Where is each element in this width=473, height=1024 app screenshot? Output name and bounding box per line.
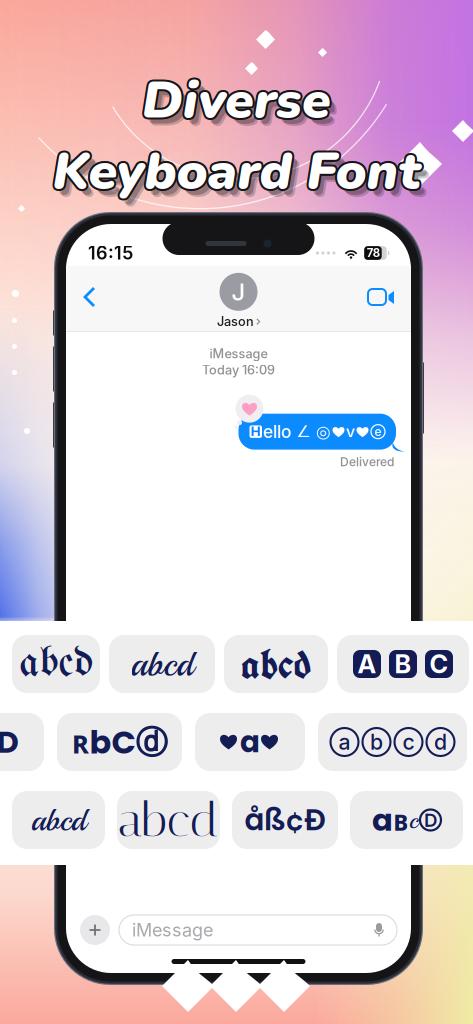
staticText: C xyxy=(429,649,448,679)
staticText: Diverse xyxy=(144,65,333,136)
staticText: A xyxy=(357,649,376,679)
staticText: ∠ xyxy=(291,422,316,441)
staticText: Keyboard Font xyxy=(52,134,420,205)
staticText: B xyxy=(394,649,411,679)
staticText: Keyboard Font xyxy=(54,134,422,205)
button[interactable]: a xyxy=(350,791,463,849)
staticText: c xyxy=(409,804,418,836)
staticText: cD xyxy=(0,720,18,763)
staticText: d xyxy=(434,729,447,755)
button[interactable]: Add attachment xyxy=(80,915,110,945)
button[interactable]: a xyxy=(318,713,467,771)
staticText: ◎ xyxy=(316,422,331,441)
staticText: a xyxy=(372,798,393,841)
staticText: åß¢Ð xyxy=(244,799,325,841)
staticText: Today 16:09 xyxy=(202,362,275,378)
button[interactable]: cD xyxy=(0,713,44,771)
staticText: v xyxy=(346,422,355,441)
button[interactable]: ʀbCⓓ xyxy=(57,713,182,771)
staticText: abcd xyxy=(241,637,311,691)
staticText: ʙ xyxy=(393,801,409,839)
button[interactable]: åß¢Ð xyxy=(232,791,338,849)
button[interactable]: abcd xyxy=(109,635,215,693)
staticText: e xyxy=(374,424,381,439)
staticText: Diverse xyxy=(142,67,331,138)
staticText: abcd xyxy=(31,800,86,840)
staticText: Keyboard Font xyxy=(52,136,420,207)
button[interactable]: Back xyxy=(74,276,105,318)
staticText: a xyxy=(338,729,350,755)
staticText: c xyxy=(402,729,414,755)
staticText: Keyboard Font xyxy=(59,144,427,215)
staticText: J xyxy=(231,277,245,306)
staticText: Diverse xyxy=(140,65,329,136)
staticText: iMessage xyxy=(209,346,267,361)
staticText: H xyxy=(251,424,261,440)
staticText: Keyboard Font xyxy=(57,142,425,213)
button[interactable]: abcd xyxy=(12,635,100,693)
button[interactable]: abcd xyxy=(117,791,220,849)
staticText: Diverse xyxy=(143,63,332,134)
staticText: a xyxy=(240,721,260,763)
staticText: Jason xyxy=(217,314,254,329)
staticText: iMessage xyxy=(132,919,213,941)
staticText: Diverse xyxy=(142,65,331,136)
button[interactable]: FaceTime xyxy=(359,278,403,315)
staticText: 16:15 xyxy=(88,242,133,264)
staticText: b xyxy=(370,729,383,755)
staticText: Delivered xyxy=(340,455,394,469)
staticText: Diverse xyxy=(142,63,331,134)
staticText: Diverse xyxy=(141,66,330,137)
staticText: Diverse xyxy=(143,66,332,137)
staticText: Diverse xyxy=(149,73,338,144)
staticText: Keyboard Font xyxy=(54,137,422,208)
staticText: abcd xyxy=(130,641,193,686)
staticText: Diverse xyxy=(141,63,330,134)
button[interactable]: a xyxy=(195,713,305,771)
staticText: Keyboard Font xyxy=(54,136,422,207)
staticText: 78 xyxy=(367,246,380,260)
staticText: abcd xyxy=(19,642,92,686)
button[interactable]: A xyxy=(337,635,469,693)
staticText: abcd xyxy=(118,792,219,848)
staticText: Keyboard Font xyxy=(51,137,419,208)
staticText: ʀbCⓓ xyxy=(71,719,167,765)
staticText: Keyboard Font xyxy=(51,134,419,205)
staticText: Keyboard Font xyxy=(50,136,418,207)
button[interactable]: Jason contact xyxy=(217,271,260,327)
staticText: Diverse xyxy=(147,71,336,142)
staticText: D xyxy=(424,809,437,831)
staticText: ello xyxy=(263,421,291,442)
button[interactable]: abcd xyxy=(12,791,105,849)
staticText: Keyboard Font xyxy=(52,138,420,209)
button[interactable]: abcd xyxy=(224,635,328,693)
